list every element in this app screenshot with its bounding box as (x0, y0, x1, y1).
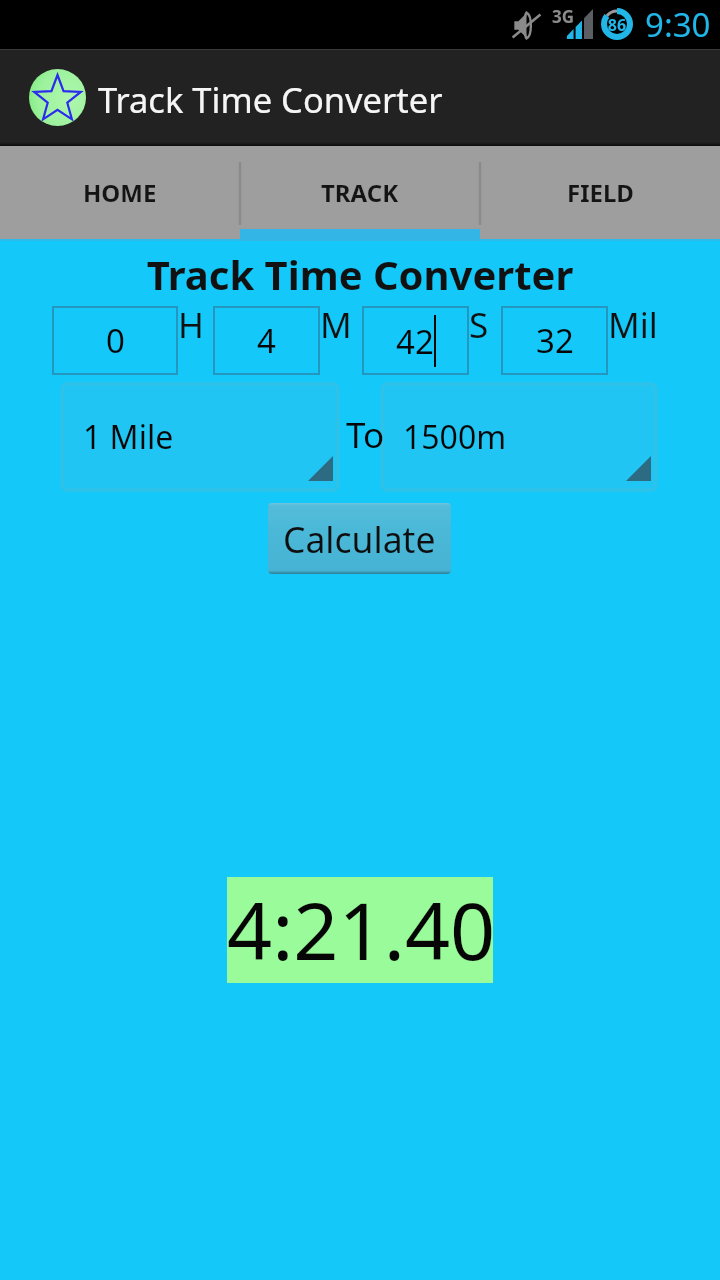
button[interactable]: 4 (213, 306, 320, 375)
button[interactable]: 32 (501, 306, 608, 375)
button[interactable]: 1 Mile (64, 386, 336, 488)
button[interactable]: 42 (362, 306, 469, 375)
staticText: Track Time Converter (0, 247, 720, 301)
button[interactable]: 0 (52, 306, 178, 375)
staticText: M (320, 301, 352, 349)
staticText: 4 (257, 318, 276, 363)
staticText: Track Time Converter (98, 76, 443, 123)
staticText: 1 Mile (83, 415, 174, 459)
button[interactable]: FIELD (480, 146, 720, 239)
button[interactable]: HOME (0, 146, 240, 239)
staticText: TRACK (321, 176, 399, 209)
staticText: 32 (536, 318, 574, 363)
staticText: 1500m (403, 415, 507, 459)
staticText: 42 (396, 319, 434, 364)
button[interactable]: 1500m (384, 386, 654, 488)
staticText: To (346, 411, 385, 459)
staticText: Calculate (283, 515, 436, 563)
other: Silent mode (512, 12, 541, 39)
staticText: HOME (83, 176, 157, 209)
staticText: Mil (608, 301, 658, 349)
other: Battery 86 percent (601, 8, 633, 40)
button[interactable]: Calculate (268, 503, 451, 574)
staticText: 0 (106, 318, 125, 363)
staticText: FIELD (567, 176, 634, 209)
staticText: H (178, 301, 204, 349)
staticText: 86 (601, 14, 633, 36)
staticText: 4:21.40 (227, 876, 493, 982)
staticText: 9:30 (645, 2, 711, 47)
button[interactable]: TRACK (240, 146, 480, 239)
staticText: S (469, 301, 489, 349)
staticText: 3G (552, 5, 575, 28)
